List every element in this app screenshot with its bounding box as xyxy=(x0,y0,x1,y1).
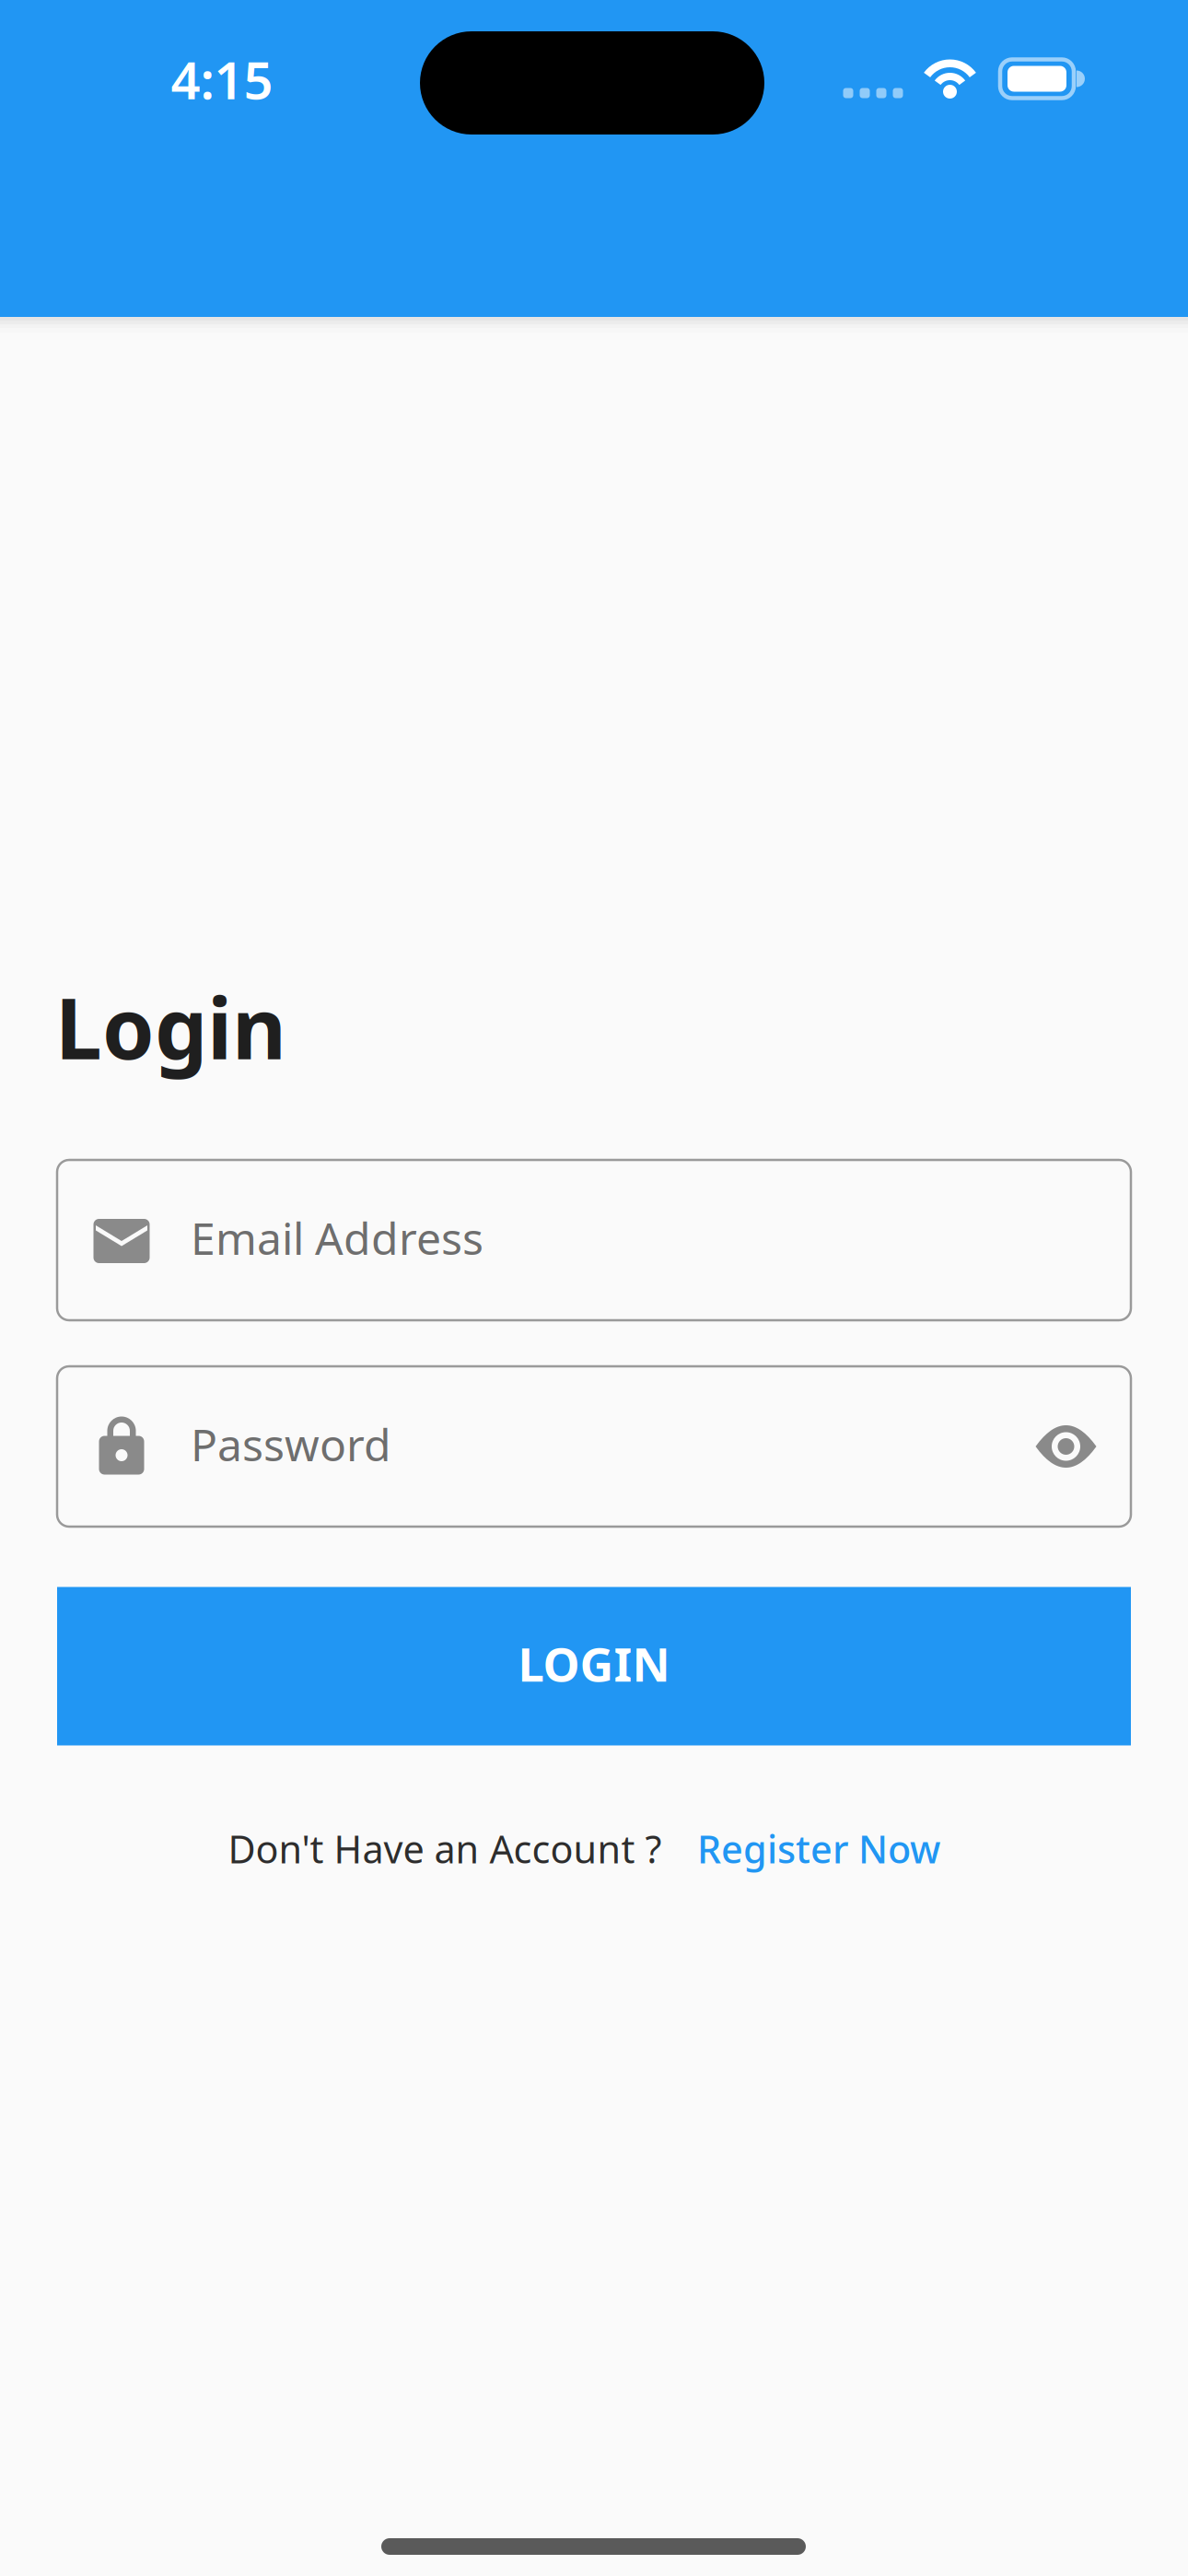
staticText: LOGIN xyxy=(518,1632,670,1694)
button[interactable]: LOGIN xyxy=(57,1587,1131,1745)
staticText: Email Address xyxy=(191,1208,483,1267)
staticText: 4:15 xyxy=(171,45,273,114)
button[interactable]: Email Address xyxy=(57,1160,1131,1320)
staticText: Don't Have an Account ? xyxy=(228,1823,662,1874)
button[interactable]: Show password xyxy=(1036,1416,1096,1477)
button[interactable]: Password xyxy=(57,1366,1131,1527)
button[interactable]: Register Now xyxy=(697,1823,940,1874)
staticText: Password xyxy=(191,1415,391,1473)
staticText: Login xyxy=(55,971,286,1082)
staticText: Register Now xyxy=(697,1823,940,1874)
